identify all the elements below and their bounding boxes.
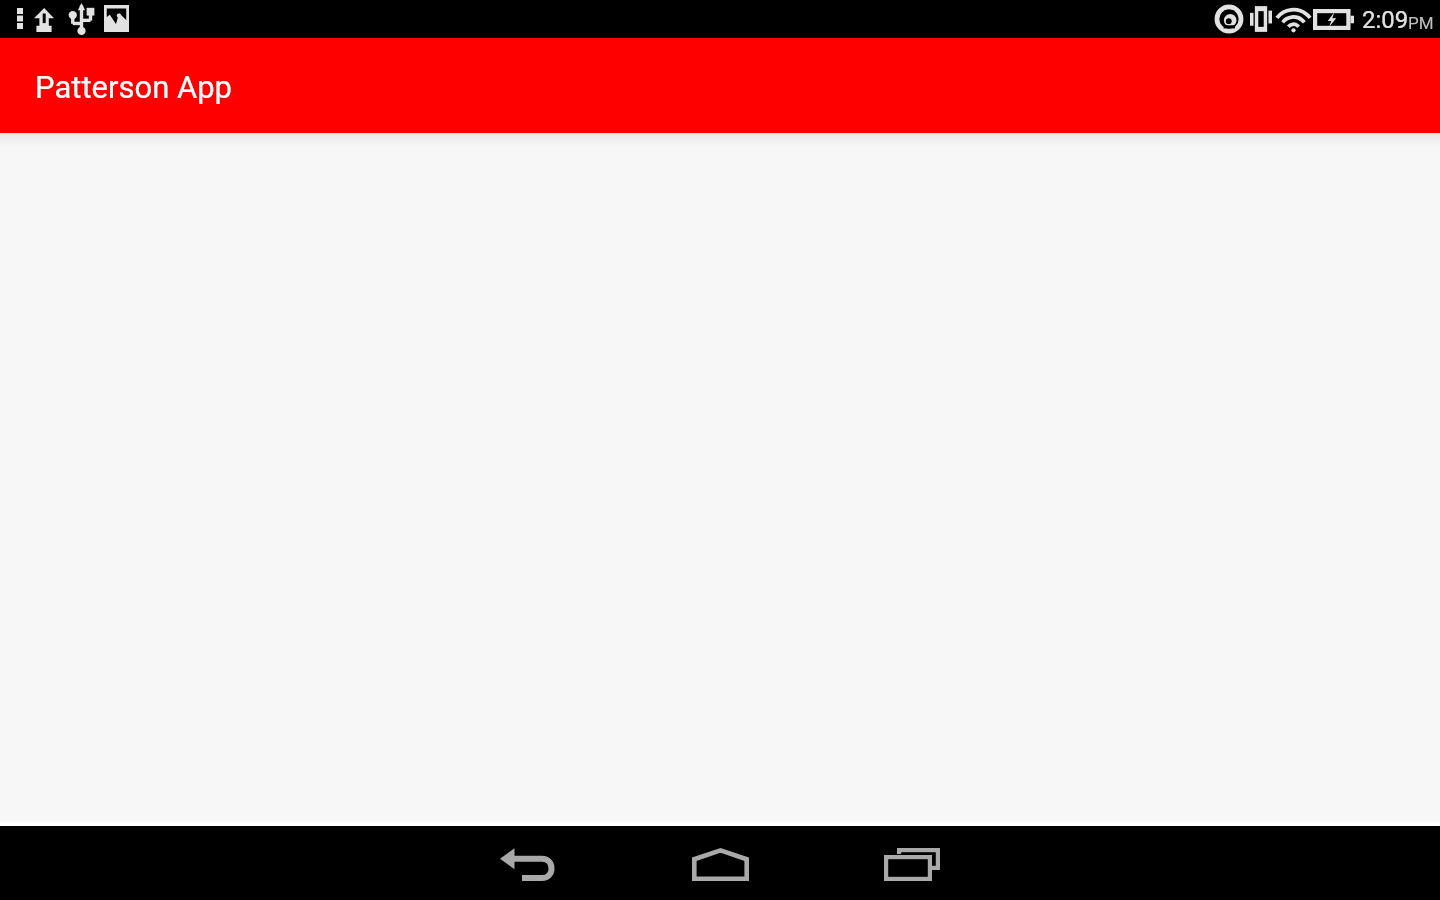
button[interactable]: Recent apps [865, 826, 961, 900]
staticText: Patterson App [35, 69, 233, 105]
button[interactable]: Patterson App [0, 38, 257, 133]
staticText: PM [1408, 13, 1434, 33]
button[interactable]: Back [479, 826, 575, 900]
button[interactable]: Home [672, 826, 768, 900]
staticText: 2:09 [1362, 6, 1409, 34]
